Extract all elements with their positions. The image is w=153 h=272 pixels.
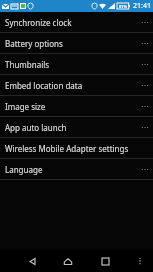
button[interactable]: More options bbox=[139, 34, 150, 52]
button[interactable]: Recent apps bbox=[97, 253, 113, 269]
staticText: Language bbox=[5, 164, 139, 175]
staticText: Thumbnails bbox=[5, 59, 139, 70]
staticText: Synchronize clock bbox=[5, 17, 139, 28]
button[interactable]: More options bbox=[139, 118, 150, 136]
staticText: 21:41 bbox=[133, 1, 151, 11]
button[interactable]: More options bbox=[139, 76, 150, 94]
button[interactable]: Menu bbox=[133, 252, 147, 270]
button[interactable]: Embed location data bbox=[0, 75, 153, 95]
button[interactable]: Back bbox=[24, 253, 40, 269]
staticText: Battery options bbox=[5, 38, 139, 49]
staticText: Wireless Mobile Adapter settings bbox=[5, 143, 139, 154]
staticText: 81% bbox=[119, 4, 128, 9]
button[interactable]: More options bbox=[139, 97, 150, 115]
staticText: App auto launch bbox=[5, 122, 139, 133]
button[interactable]: More options bbox=[139, 13, 150, 31]
staticText: Image size bbox=[5, 101, 139, 112]
button[interactable]: Battery options bbox=[0, 33, 153, 53]
button[interactable]: Synchronize clock bbox=[0, 12, 153, 32]
button[interactable]: Wireless Mobile Adapter settings bbox=[0, 138, 153, 158]
button[interactable]: More options bbox=[139, 55, 150, 73]
button[interactable]: Thumbnails bbox=[0, 54, 153, 74]
button[interactable]: Image size bbox=[0, 96, 153, 116]
button[interactable]: More options bbox=[139, 160, 150, 178]
staticText: Embed location data bbox=[5, 80, 139, 91]
button[interactable]: Home bbox=[60, 253, 76, 269]
button[interactable]: Language bbox=[0, 159, 153, 179]
button[interactable]: App auto launch bbox=[0, 117, 153, 137]
